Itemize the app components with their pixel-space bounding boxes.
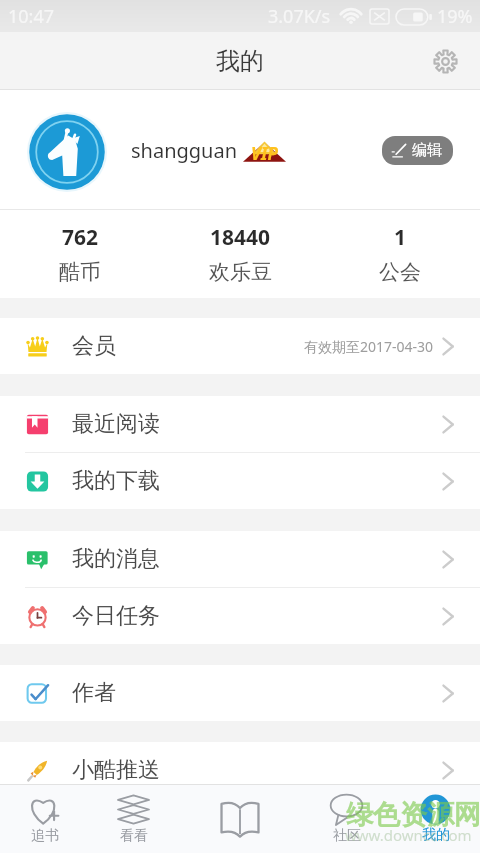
staticText: 追书 [31, 827, 59, 845]
button[interactable]: 我的 [391, 785, 480, 853]
staticText: 酷币 [59, 259, 101, 285]
staticText: shangguan [131, 137, 238, 164]
staticText: 19% [437, 4, 473, 29]
staticText: 我的消息 [72, 545, 160, 573]
staticText: 绿色资源网 [346, 798, 480, 832]
button[interactable]: 18440 [160, 210, 320, 298]
staticText: 今日任务 [72, 602, 160, 630]
staticText: 公会 [379, 259, 421, 285]
staticText: 小酷推送 [72, 756, 160, 784]
button[interactable]: 小酷推送 [0, 742, 480, 798]
staticText: 762 [62, 223, 99, 252]
button[interactable]: 看看 [89, 785, 178, 853]
staticText: 有效期至2017-04-30 [304, 337, 434, 356]
button[interactable]: 社区 [302, 785, 391, 853]
staticText: 看看 [120, 827, 148, 845]
staticText: www.downcc.com [345, 825, 472, 845]
staticText: 3.07K/s [268, 4, 331, 29]
staticText: 我的下载 [72, 467, 160, 495]
button[interactable]: 追书 [0, 785, 89, 853]
button[interactable]: 最近阅读 [0, 396, 480, 452]
button[interactable]: 作者 [0, 665, 480, 721]
button[interactable]: Settings [423, 39, 467, 83]
button[interactable]: 编辑 [382, 136, 453, 165]
staticText: 作者 [72, 679, 116, 707]
staticText: 10:47 [8, 4, 55, 29]
button[interactable]: 会员 [0, 318, 480, 374]
button[interactable]: Profile avatar [27, 112, 107, 192]
button[interactable]: 762 [0, 210, 160, 298]
staticText: VIP [251, 142, 278, 165]
button[interactable]: Bookshelf [178, 785, 302, 853]
staticText: 最近阅读 [72, 410, 160, 438]
staticText: 1 [394, 223, 407, 252]
staticText: 我的 [216, 46, 264, 76]
button[interactable]: 我的消息 [0, 531, 480, 587]
button[interactable]: 1 [320, 210, 480, 298]
staticText: 编辑 [412, 141, 442, 160]
button[interactable]: 我的下载 [0, 453, 480, 509]
staticText: 会员 [72, 332, 116, 360]
staticText: 欢乐豆 [209, 259, 272, 285]
staticText: 18440 [210, 223, 271, 252]
staticText: 社区 [333, 827, 361, 845]
button[interactable]: 今日任务 [0, 588, 480, 644]
staticText: 我的 [422, 826, 450, 844]
